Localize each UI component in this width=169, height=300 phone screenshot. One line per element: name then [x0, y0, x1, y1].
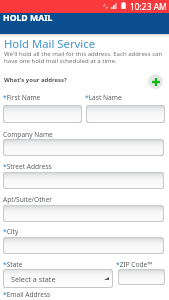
staticText: *ZIP Code™ — [116, 260, 153, 269]
button[interactable] — [4, 173, 163, 188]
button[interactable] — [4, 140, 163, 155]
staticText: We'll hold all the mail for this address… — [4, 50, 163, 65]
button[interactable]: Add address — [148, 74, 163, 89]
staticText: 10:23 AM — [130, 1, 167, 12]
staticText: *First Name — [3, 93, 41, 102]
staticText: What's your address? — [4, 76, 67, 84]
staticText: *Street Address — [3, 162, 52, 171]
staticText: Apt/Suite/Other — [3, 195, 53, 204]
button[interactable] — [4, 106, 81, 122]
button[interactable]: Select a state — [4, 270, 112, 287]
staticText: *Email Address — [3, 290, 51, 299]
button[interactable] — [87, 106, 164, 122]
staticText: Company Name — [3, 130, 53, 139]
staticText: *City — [3, 227, 19, 236]
button[interactable] — [4, 238, 163, 253]
staticText: HOLD MAIL — [3, 12, 53, 24]
staticText: Select a state — [11, 274, 56, 284]
staticText: *Last Name — [85, 93, 122, 102]
button[interactable] — [4, 206, 163, 221]
staticText: *State — [3, 260, 23, 269]
button[interactable] — [119, 270, 164, 284]
staticText: Hold Mail Service — [4, 36, 96, 51]
